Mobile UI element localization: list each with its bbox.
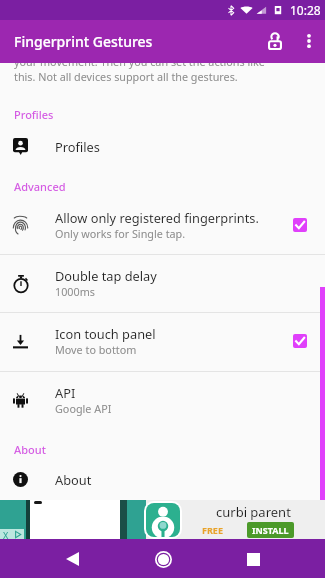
button[interactable]: Toggle Allow only registered fingerprint… [293,218,307,232]
staticText: Only works for Single tap. [55,226,186,241]
staticText: About [55,471,92,488]
button[interactable]: Recents [234,540,272,578]
staticText: About [14,442,46,457]
button[interactable]: Back [53,540,91,578]
staticText: 1000ms [55,284,95,299]
staticText: Icon touch panel [55,325,156,342]
button[interactable]: About [0,463,325,495]
staticText: Fingerprint Gestures [14,32,153,51]
button[interactable]: Icon touch panel [0,312,325,370]
staticText: Google API [55,401,112,416]
staticText: this. Not all devices support all the ge… [14,69,238,84]
staticText: API [55,384,76,401]
button[interactable]: API [0,371,325,429]
staticText: INSTALL [252,524,289,536]
staticText: curbi parent [216,503,291,521]
staticText: FREE [202,524,223,536]
staticText: 10:28 [290,2,321,18]
button[interactable]: Double tap delay [0,254,325,312]
staticText: Move to bottom [55,342,137,357]
staticText: Double tap delay [55,267,157,284]
button[interactable]: Toggle Icon touch panel [293,334,307,348]
button[interactable]: Home [144,540,182,578]
button[interactable]: INSTALL [247,522,294,538]
staticText: your movement. Then you can set the acti… [14,63,265,69]
staticText: Profiles [14,107,54,122]
staticText: Advanced [14,179,66,194]
button[interactable]: Allow only registered fingerprints. [0,196,325,254]
button[interactable]: Advertisement: curbi parent [0,500,325,539]
staticText: Profiles [55,138,100,155]
staticText: X [3,529,9,539]
button[interactable]: Unlock [257,23,293,59]
staticText: Allow only registered fingerprints. [55,209,259,226]
button[interactable]: Profiles [0,130,325,162]
button[interactable]: More options [293,25,325,57]
